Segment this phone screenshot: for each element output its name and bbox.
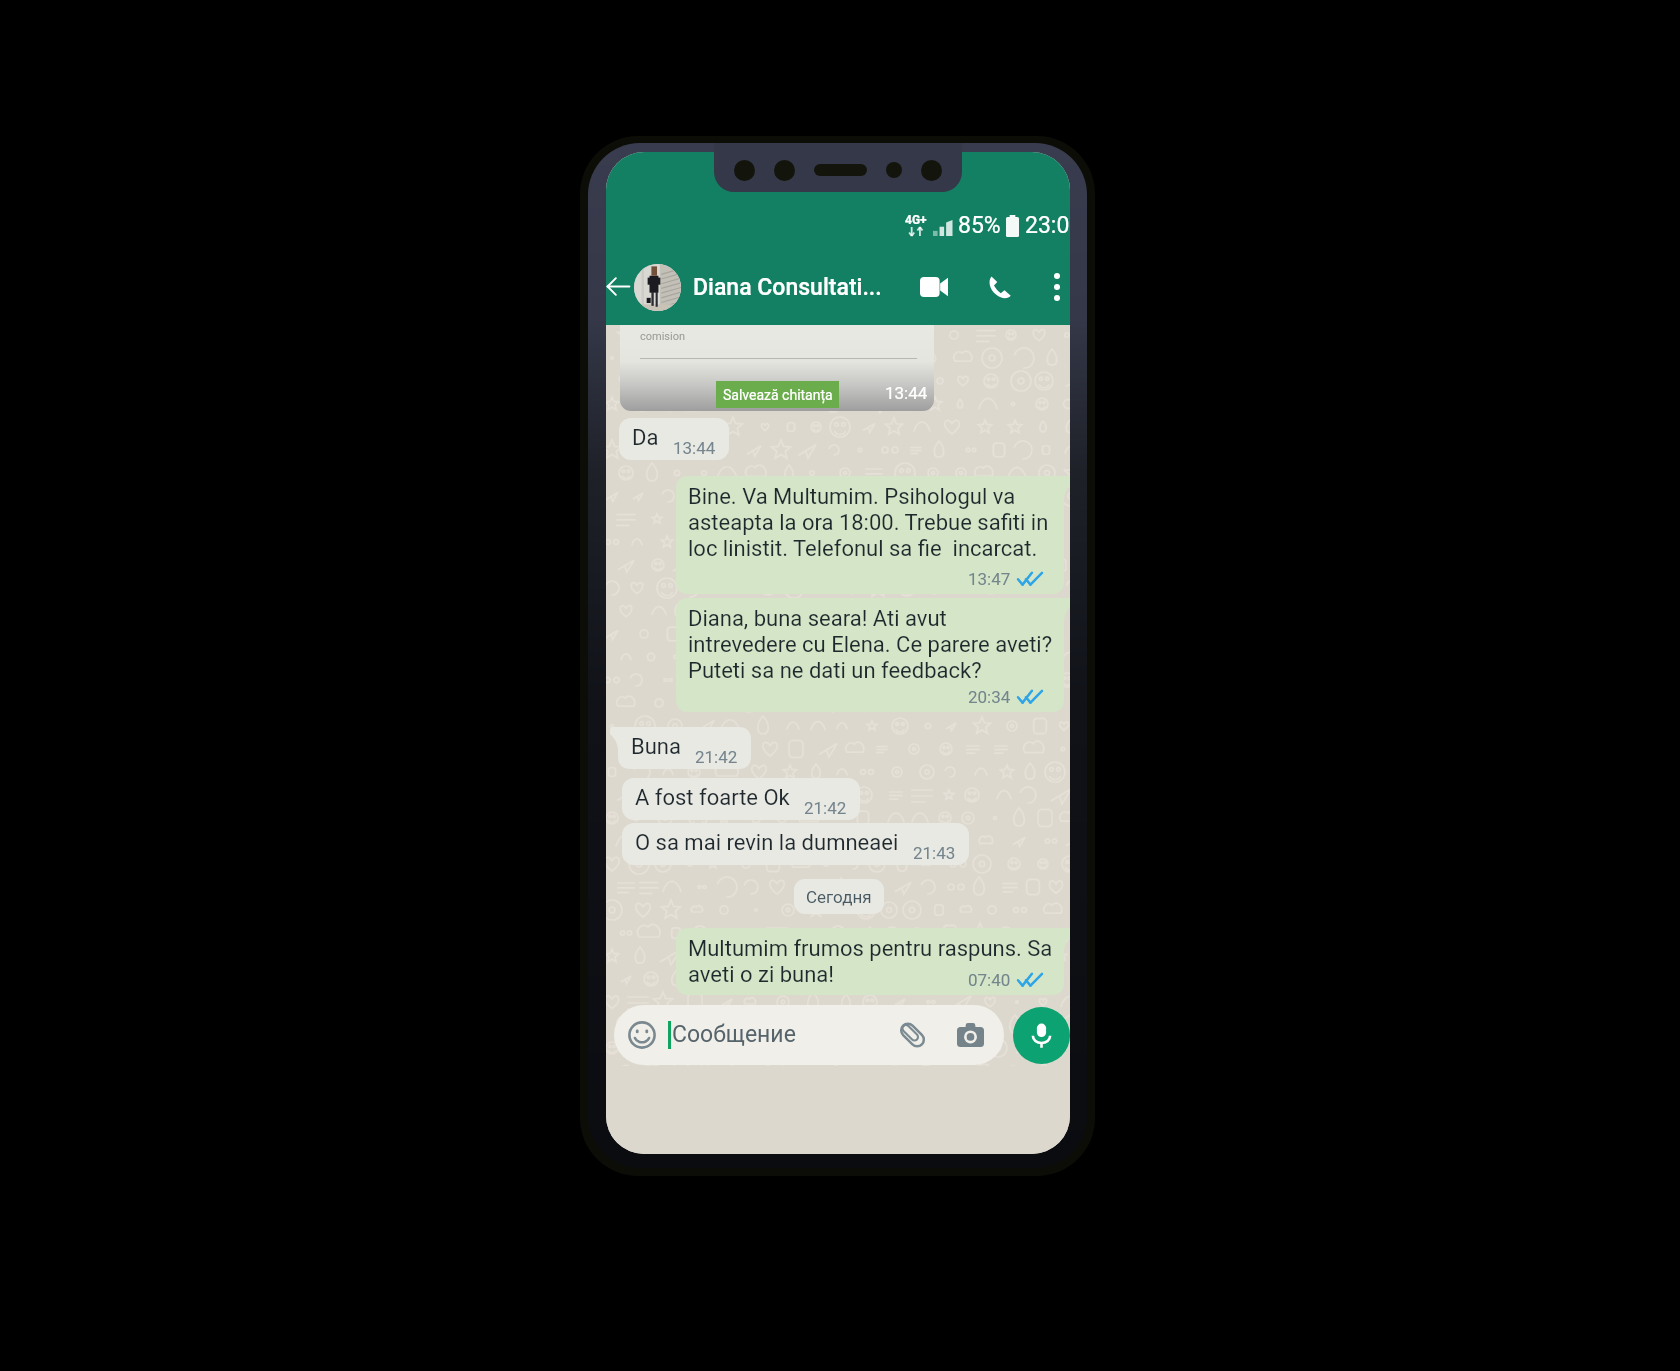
button[interactable]: Call [977, 265, 1021, 309]
staticText: 21:42 [804, 798, 847, 818]
staticText: 85% [958, 212, 1001, 239]
staticText: asteapta la ora 18:00. Trebue safiti in [688, 510, 1049, 536]
staticText: 07:40 [968, 970, 1011, 990]
staticText: 21:42 [695, 747, 738, 767]
staticText: Diana, buna seara! Ati avut [688, 606, 947, 632]
staticText: Сообщение [672, 1021, 796, 1048]
staticText: aveti o zi buna! [688, 962, 834, 988]
staticText: Buna [631, 734, 681, 760]
staticText: intrevedere cu Elena. Ce parere aveti? [688, 632, 1053, 658]
staticText: Multumim frumos pentru raspuns. Sa [688, 936, 1053, 962]
staticText: comision [640, 330, 686, 343]
staticText: 4G+ [905, 213, 927, 227]
staticText: Puteti sa ne dati un feedback? [688, 658, 982, 684]
button[interactable]: Diana Consultati... [693, 249, 903, 325]
button[interactable]: Diana, buna seara! Ati avut [676, 598, 1070, 712]
button[interactable]: O sa mai revin la dumneaei [622, 823, 969, 865]
button[interactable]: Da [619, 418, 729, 460]
staticText: 20:34 [968, 687, 1011, 707]
button[interactable]: More options [1035, 265, 1070, 309]
button[interactable]: A fost foarte Ok [622, 778, 860, 820]
staticText: Da [632, 425, 659, 451]
staticText: Salvează chitanța [723, 387, 833, 403]
button[interactable]: Message input [614, 1005, 1004, 1065]
staticText: 13:47 [968, 569, 1011, 589]
staticText: A fost foarte Ok [635, 785, 790, 811]
staticText: loc linistit. Telefonul sa fie incarcat. [688, 536, 1038, 562]
button[interactable]: Profile photo [634, 264, 681, 311]
button[interactable]: Multumim frumos pentru raspuns. Sa [676, 928, 1070, 995]
button[interactable]: Bine. Va Multumim. Psihologul va [676, 476, 1070, 594]
button[interactable]: Buna [610, 727, 751, 769]
staticText: O sa mai revin la dumneaei [635, 830, 899, 856]
staticText: Diana Consultati... [693, 274, 882, 301]
staticText: 23:09 [1025, 212, 1070, 239]
staticText: 13:44 [673, 438, 716, 458]
button[interactable]: Voice message [1013, 1007, 1070, 1064]
button[interactable]: Back [606, 269, 642, 305]
button[interactable]: Salvează chitanța [716, 381, 839, 408]
staticText: 13:44 [885, 383, 928, 403]
staticText: Bine. Va Multumim. Psihologul va [688, 484, 1016, 510]
staticText: Сегодня [806, 887, 872, 907]
button[interactable]: Сегодня [794, 879, 884, 914]
staticText: 21:43 [913, 843, 956, 863]
button[interactable]: comision [620, 325, 934, 411]
button[interactable]: Video call [912, 265, 956, 309]
